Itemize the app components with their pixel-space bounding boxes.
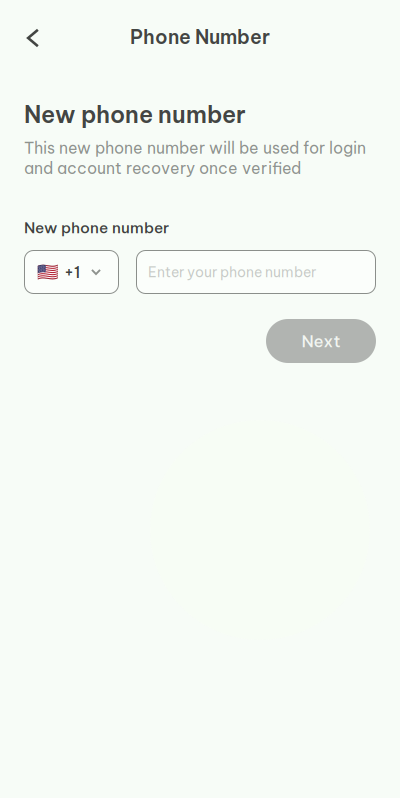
- staticText: Next: [301, 330, 340, 352]
- staticText: This new phone number will be used for l…: [24, 138, 366, 178]
- button[interactable]: Enter your phone number: [136, 250, 376, 294]
- button[interactable]: Back: [11, 16, 55, 60]
- staticText: New phone number: [24, 100, 246, 129]
- button[interactable]: Next: [266, 319, 376, 363]
- staticText: Phone Number: [130, 25, 270, 49]
- staticText: 🇺🇸: [37, 262, 59, 282]
- button[interactable]: 🇺🇸: [24, 250, 119, 294]
- staticText: New phone number: [24, 218, 169, 237]
- staticText: Enter your phone number: [148, 263, 316, 281]
- staticText: +1: [64, 262, 80, 282]
